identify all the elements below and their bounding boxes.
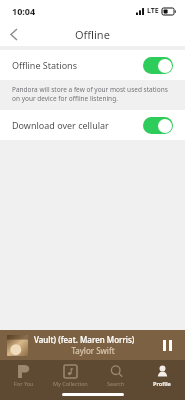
button[interactable]: Toggle on xyxy=(143,57,173,74)
staticText: Pandora will store a few of your most us… xyxy=(12,85,173,103)
staticText: For You xyxy=(14,380,34,387)
button[interactable]: Profile xyxy=(139,363,185,387)
button[interactable]: Back xyxy=(0,22,28,46)
button[interactable]: For You xyxy=(0,363,47,387)
staticText: Offline Stations xyxy=(12,59,143,71)
staticText: Taylor Swift xyxy=(34,345,152,356)
staticText: Vault) (feat. Maren Morris) You All Ov xyxy=(34,334,152,345)
staticText: My Collection xyxy=(53,380,88,387)
staticText: Offline xyxy=(75,27,110,42)
staticText: Search xyxy=(107,380,125,387)
button[interactable]: Offline Stations xyxy=(0,50,185,80)
button[interactable]: Pause xyxy=(156,334,178,356)
button[interactable]: Toggle on xyxy=(143,117,173,134)
staticText: LTE xyxy=(147,6,159,16)
staticText: 10:04 xyxy=(12,5,36,17)
button[interactable]: Download over cellular xyxy=(0,110,185,140)
button[interactable]: My Collection xyxy=(47,363,93,387)
button[interactable]: Vault) (feat. Maren Morris) You All Ov xyxy=(0,330,185,360)
button[interactable]: Search xyxy=(93,363,139,387)
staticText: Download over cellular xyxy=(12,119,143,131)
staticText: Profile xyxy=(153,380,171,387)
